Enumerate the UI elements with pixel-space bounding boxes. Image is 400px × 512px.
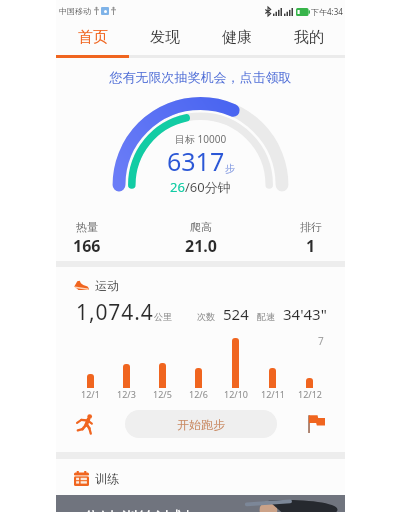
button[interactable]: Running — [71, 410, 99, 438]
staticText: 12/12 — [298, 388, 322, 400]
button[interactable]: 健康 — [201, 22, 273, 55]
button[interactable]: 我的 — [273, 22, 345, 55]
button[interactable]: 爬高 — [165, 220, 237, 257]
staticText: 12/5 — [153, 388, 172, 400]
staticText: 166 — [73, 235, 101, 257]
staticText: 首页 — [78, 28, 108, 47]
staticText: 目标 10000 — [175, 132, 227, 146]
button[interactable]: 热量 — [51, 220, 123, 257]
staticText: 步 — [225, 162, 235, 175]
staticText: 1 — [306, 235, 316, 257]
staticText: 次数 — [197, 311, 215, 322]
button[interactable]: 运动 — [74, 278, 119, 293]
button[interactable]: 发现 — [129, 22, 201, 55]
staticText: 中国移动 — [59, 6, 91, 16]
staticText: 12/6 — [189, 388, 208, 400]
staticText: 我的 — [294, 28, 324, 47]
staticText: 开始跑步 — [177, 417, 225, 432]
button[interactable]: 训练 — [74, 471, 119, 486]
staticText: 12/3 — [117, 388, 136, 400]
staticText: 12/10 — [224, 388, 248, 400]
staticText: 12/11 — [261, 388, 285, 400]
button[interactable]: 排行 — [275, 220, 347, 257]
staticText: 6317 — [167, 144, 225, 178]
staticText: /60分钟 — [185, 178, 231, 196]
staticText: 排行 — [300, 220, 322, 234]
staticText: 5分钟 训练计划 — [73, 506, 190, 512]
staticText: 运动 — [95, 278, 119, 293]
staticText: 12/1 — [81, 388, 100, 400]
staticText: 34'43" — [283, 304, 327, 324]
button[interactable]: 首页 — [56, 22, 129, 55]
staticText: 524 — [223, 304, 249, 324]
staticText: 训练 — [95, 471, 119, 486]
button[interactable]: 5分钟 训练计划 — [56, 495, 345, 512]
staticText: 公里 — [154, 311, 172, 322]
staticText: 7 — [318, 334, 324, 348]
button[interactable]: 开始跑步 — [125, 410, 277, 438]
button[interactable]: 您有无限次抽奖机会，点击领取 — [56, 69, 345, 85]
staticText: 爬高 — [190, 220, 212, 234]
staticText: 发现 — [150, 28, 180, 47]
staticText: 热量 — [76, 220, 98, 234]
staticText: 配速 — [257, 311, 275, 322]
button[interactable]: Goal — [302, 410, 330, 438]
staticText: 1,074.4 — [76, 298, 154, 327]
staticText: 26 — [170, 178, 185, 196]
staticText: 下午4:34 — [311, 6, 343, 17]
staticText: 健康 — [222, 28, 252, 47]
staticText: 21.0 — [185, 235, 217, 257]
